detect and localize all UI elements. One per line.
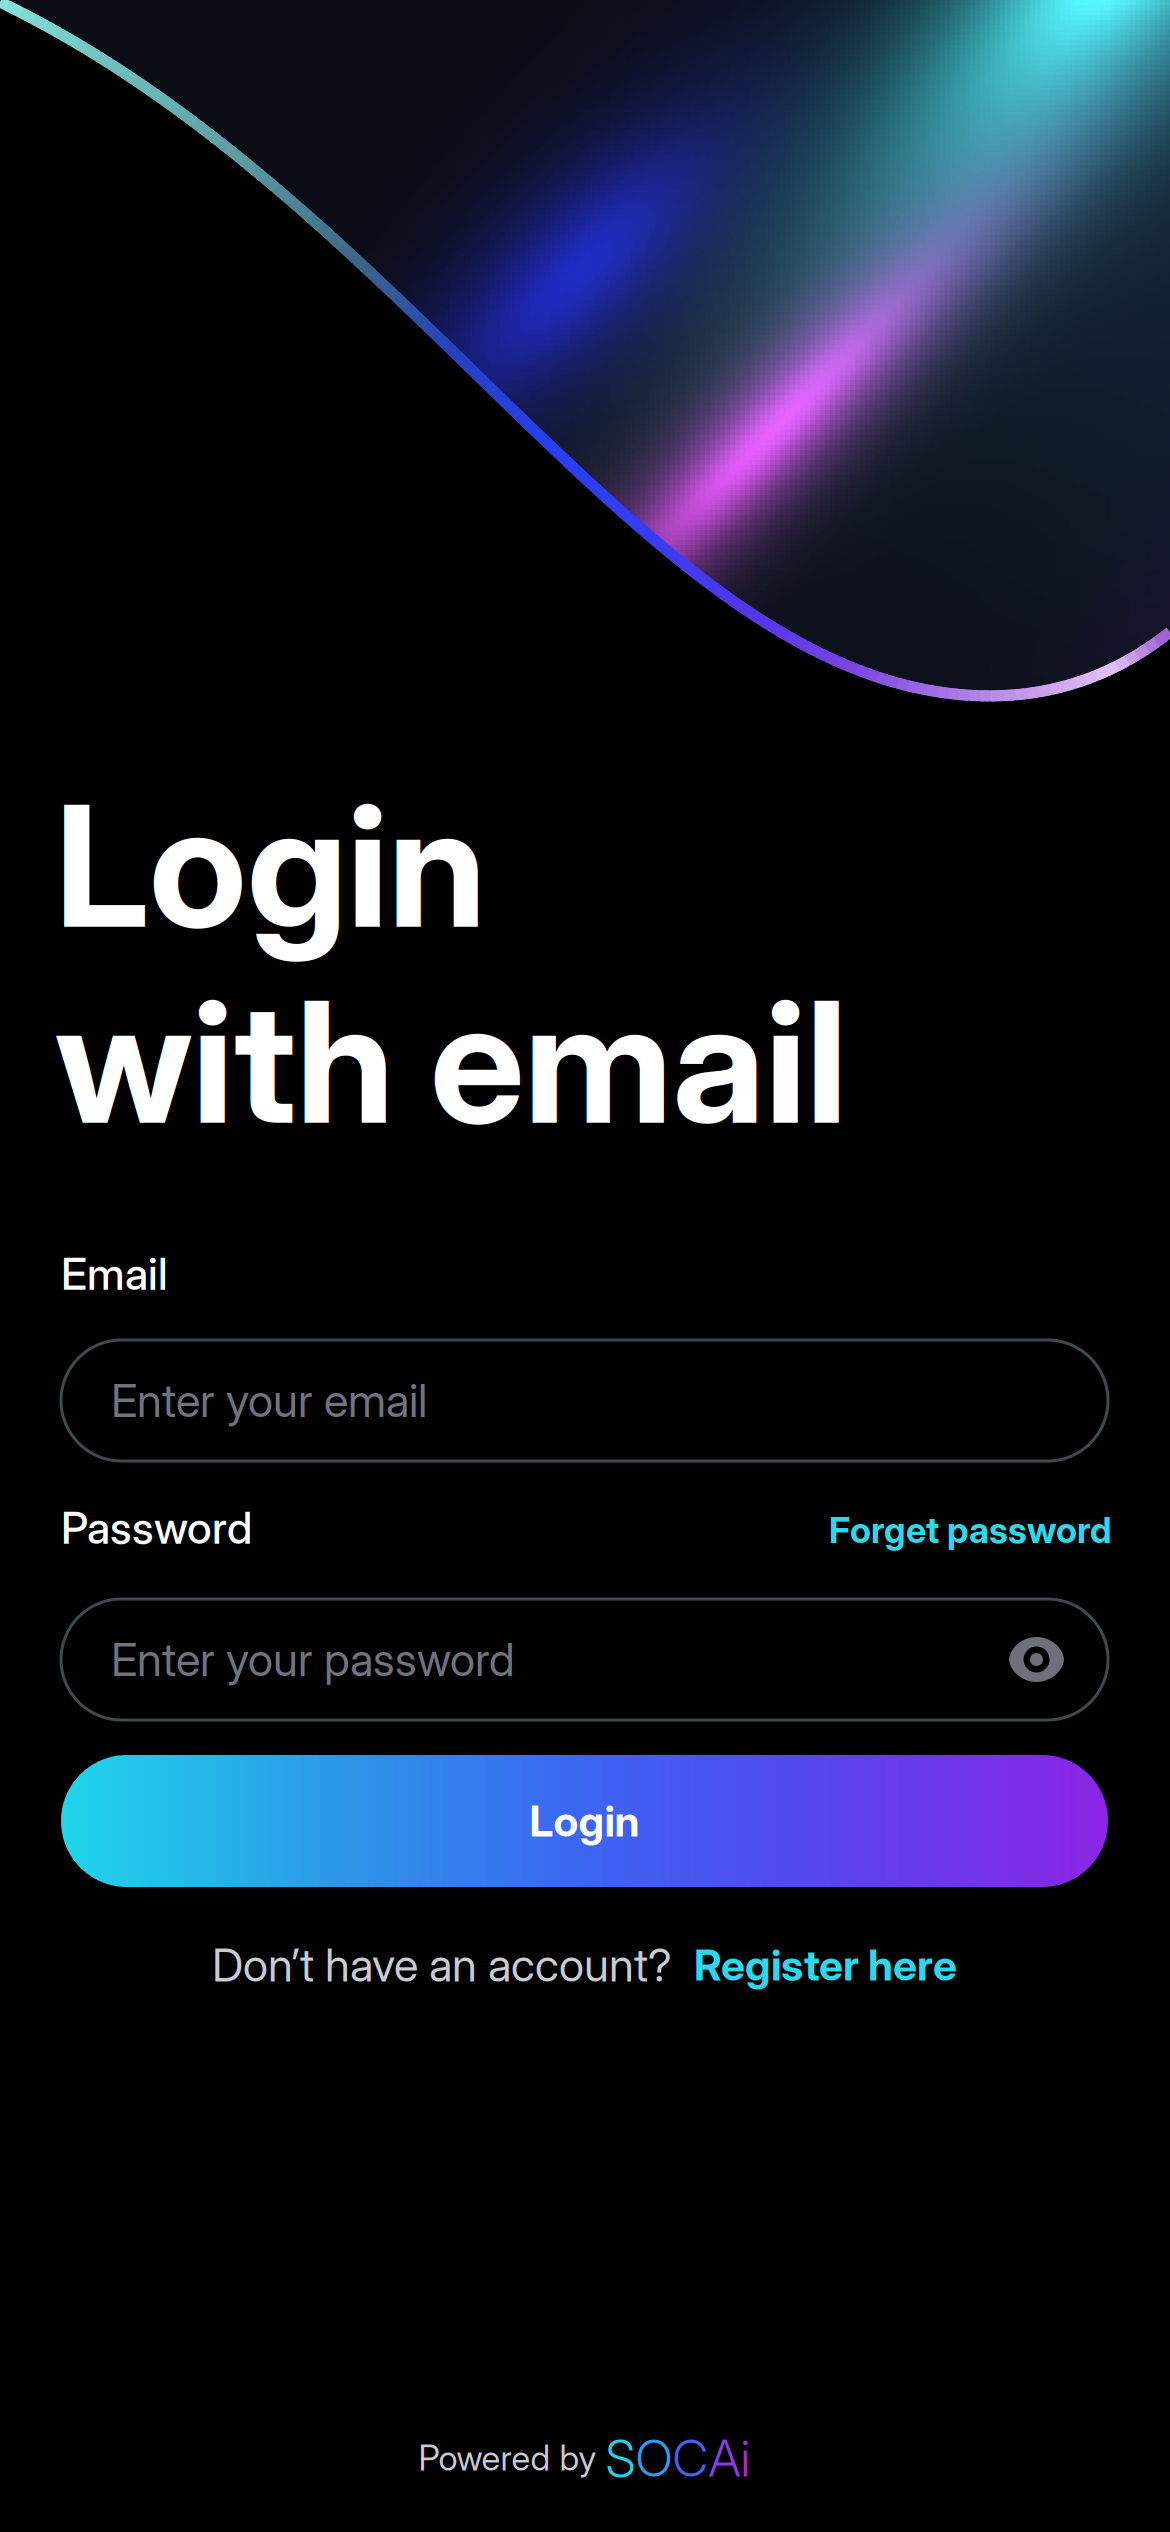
button[interactable]: Show password bbox=[1009, 1631, 1064, 1687]
staticText: Register here bbox=[694, 1939, 957, 1991]
staticText: Enter your password bbox=[111, 1632, 515, 1687]
staticText: Enter your email bbox=[111, 1373, 427, 1428]
staticText: O bbox=[635, 2427, 672, 2489]
button[interactable]: Login bbox=[61, 1755, 1108, 1887]
staticText: Powered by bbox=[418, 2437, 605, 2479]
staticText: Don’t have an account? bbox=[212, 1938, 672, 1992]
staticText: Login bbox=[529, 1795, 639, 1847]
staticText: with email bbox=[55, 960, 847, 1163]
staticText: C bbox=[672, 2427, 708, 2489]
staticText: A bbox=[708, 2427, 740, 2489]
staticText: i bbox=[740, 2427, 750, 2489]
staticText: Email bbox=[61, 1247, 168, 1300]
staticText: Password bbox=[61, 1501, 252, 1554]
button[interactable]: Register here bbox=[694, 1939, 957, 1991]
button[interactable]: Forget password bbox=[812, 1503, 1112, 1557]
staticText: Login bbox=[55, 764, 486, 967]
staticText: S bbox=[605, 2427, 635, 2489]
staticText: Forget password bbox=[829, 1508, 1112, 1552]
